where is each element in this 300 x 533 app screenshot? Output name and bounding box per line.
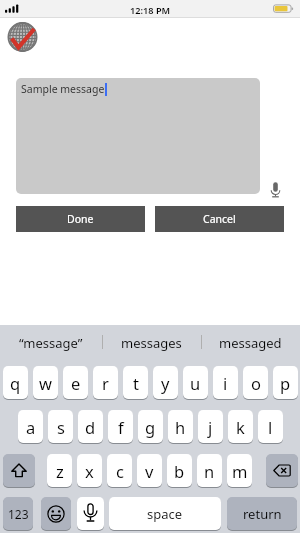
button[interactable]: messaged [201,325,300,360]
staticText: space [147,505,183,523]
button[interactable]: c [107,454,132,487]
button[interactable]: 123 [3,497,33,530]
button[interactable]: q [3,366,28,399]
button[interactable]: k [228,410,253,443]
staticText: q [10,372,21,394]
staticText: w [39,372,52,394]
staticText: s [57,416,65,438]
staticText: o [251,372,261,394]
button[interactable]: l [258,410,283,443]
staticText: a [26,416,36,438]
button[interactable] [266,454,298,487]
staticText: 123 [8,506,29,522]
staticText: c [116,460,124,482]
staticText: l [268,416,273,438]
staticText: p [280,372,291,394]
button[interactable]: u [183,366,208,399]
staticText: e [71,372,81,394]
button[interactable]: y [153,366,178,399]
button[interactable] [77,497,104,530]
staticText: z [56,460,64,482]
button[interactable]: v [137,454,162,487]
staticText: x [85,460,94,482]
staticText: b [174,460,185,482]
button[interactable] [41,497,71,530]
staticText: return [243,505,282,523]
button[interactable]: o [243,366,268,399]
staticText: i [223,372,228,394]
button[interactable]: space [109,497,221,530]
button[interactable]: h [168,410,193,443]
staticText: Cancel [203,212,236,226]
staticText: r [102,372,109,394]
staticText: f [118,416,124,438]
button[interactable]: r [93,366,118,399]
button[interactable]: m [227,454,252,487]
staticText: d [85,416,96,438]
staticText: “message” [19,334,83,352]
staticText: v [145,460,154,482]
staticText: m [232,460,248,482]
button[interactable]: Done [16,206,145,232]
button[interactable]: Sample message [16,78,260,194]
button[interactable]: s [48,410,73,443]
staticText: g [145,416,156,438]
button[interactable]: x [77,454,102,487]
button[interactable]: t [123,366,148,399]
button[interactable]: return [227,497,297,530]
button[interactable]: e [63,366,88,399]
staticText: j [208,416,213,438]
staticText: n [204,460,215,482]
button[interactable]: f [108,410,133,443]
button[interactable]: Cancel [155,206,284,232]
button[interactable]: a [18,410,43,443]
button[interactable]: j [198,410,223,443]
button[interactable]: p [273,366,298,399]
button[interactable]: messages [102,325,201,360]
staticText: messaged [219,334,282,352]
button[interactable] [3,454,35,487]
staticText: Done [67,212,94,226]
button[interactable]: w [33,366,58,399]
staticText: messages [121,334,182,352]
staticText: k [236,416,245,438]
staticText: Sample message [21,82,105,96]
button[interactable]: d [78,410,103,443]
button[interactable]: g [138,410,163,443]
staticText: 12:18 PM [130,4,171,17]
staticText: u [190,372,201,394]
staticText: t [133,372,139,394]
button[interactable]: i [213,366,238,399]
staticText: h [175,416,186,438]
button[interactable]: z [47,454,72,487]
staticText: y [161,372,170,394]
button[interactable]: b [167,454,192,487]
button[interactable]: “message” [0,325,102,360]
button[interactable]: n [197,454,222,487]
